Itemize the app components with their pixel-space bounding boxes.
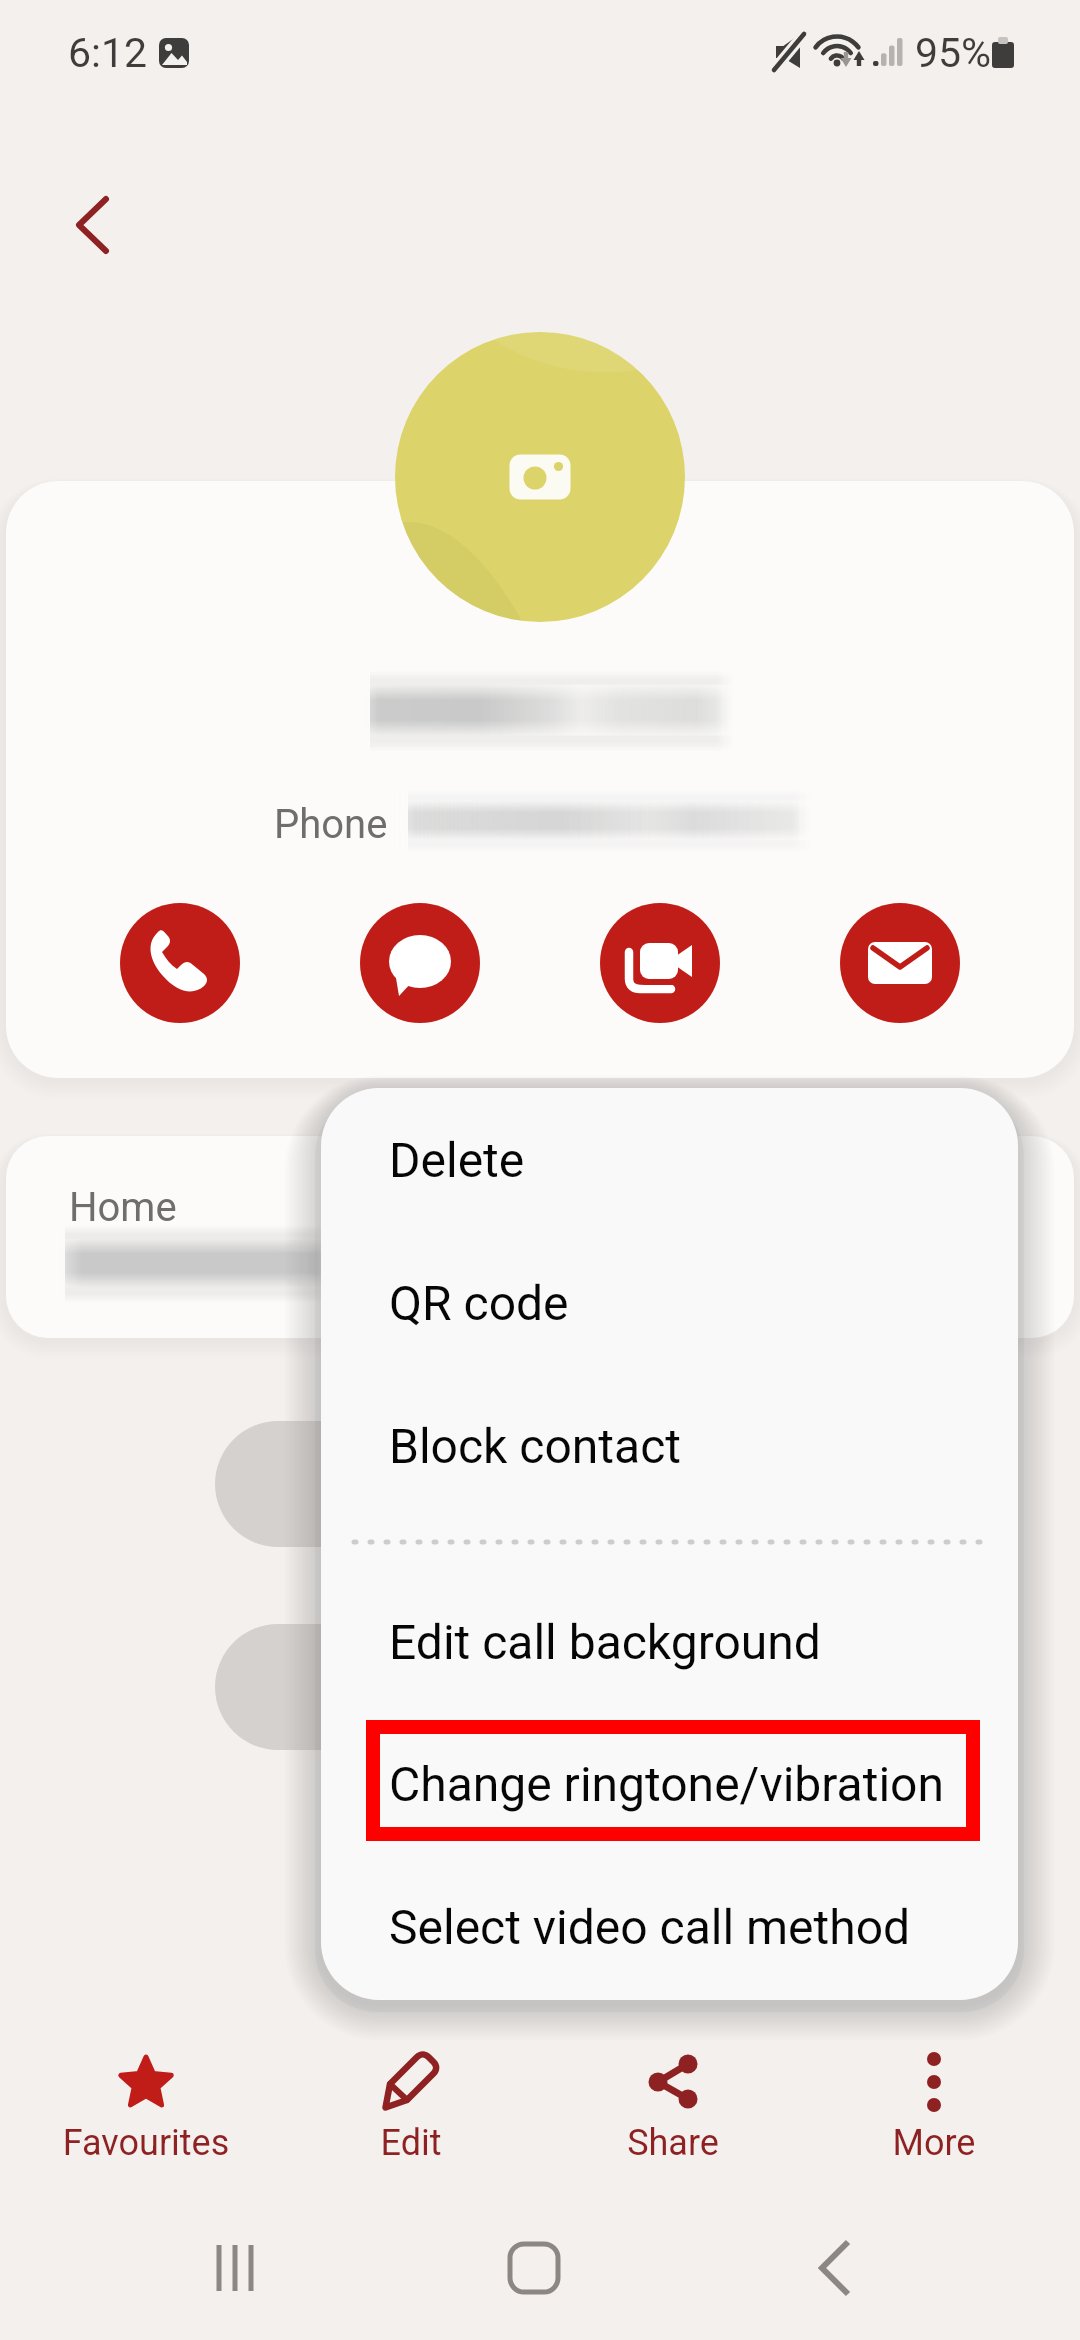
staticText: Favourites bbox=[26, 2122, 266, 2164]
staticText: QR code bbox=[389, 1275, 569, 1331]
button[interactable]: Back bbox=[40, 165, 160, 285]
button[interactable] bbox=[6, 1136, 1074, 1338]
button[interactable]: QR code bbox=[321, 1215, 1018, 1358]
staticText: Select video call method bbox=[389, 1899, 911, 1955]
staticText: 95% bbox=[915, 29, 992, 77]
staticText: Delete bbox=[389, 1132, 525, 1188]
staticText: Block contact bbox=[389, 1418, 681, 1474]
button[interactable]: Edit call background bbox=[321, 1554, 1018, 1697]
button[interactable]: More bbox=[814, 2038, 1054, 2188]
button[interactable]: Delete bbox=[321, 1072, 1018, 1215]
button[interactable]: Profile picture bbox=[395, 332, 685, 622]
button[interactable]: Recents bbox=[165, 2198, 305, 2338]
staticText: Change ringtone/vibration bbox=[389, 1756, 944, 1812]
button[interactable]: Change ringtone/vibration bbox=[321, 1696, 1018, 1839]
staticText: Edit bbox=[291, 2122, 531, 2164]
button[interactable]: Block contact bbox=[321, 1358, 1018, 1501]
button[interactable]: Message bbox=[360, 903, 480, 1023]
button[interactable]: Edit bbox=[291, 2038, 531, 2188]
button[interactable]: Share bbox=[553, 2038, 793, 2188]
staticText: More bbox=[814, 2122, 1054, 2164]
button[interactable]: Video call bbox=[600, 903, 720, 1023]
staticText: 6:12 bbox=[68, 29, 148, 77]
staticText: Home bbox=[69, 1184, 177, 1231]
button[interactable]: Select video call method bbox=[321, 1839, 1018, 1982]
staticText: Phone bbox=[274, 801, 388, 848]
button[interactable]: Call bbox=[120, 903, 240, 1023]
staticText: Edit call background bbox=[389, 1614, 821, 1670]
button[interactable]: Email bbox=[840, 903, 960, 1023]
button[interactable]: Favourites bbox=[26, 2038, 266, 2188]
staticText: Share bbox=[553, 2122, 793, 2164]
button[interactable]: Home bbox=[464, 2198, 604, 2338]
button[interactable]: Back bbox=[765, 2198, 905, 2338]
